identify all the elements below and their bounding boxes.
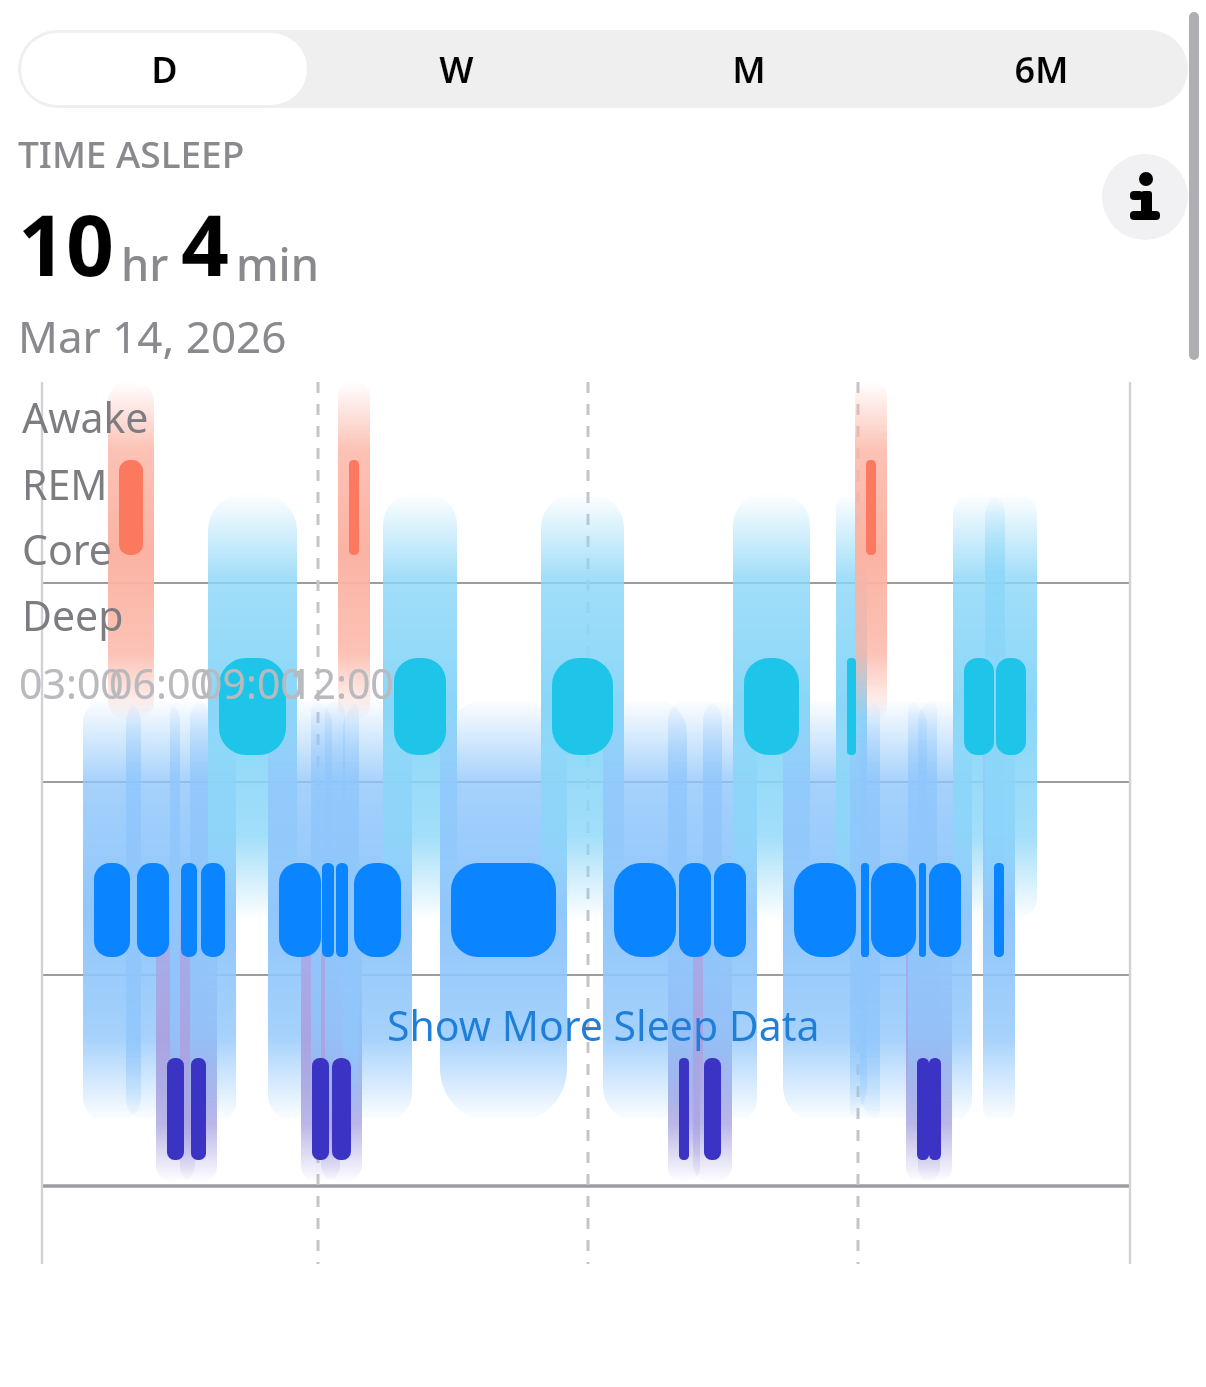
button[interactable]: Information about sleep data [1102, 154, 1188, 240]
button[interactable]: 6M [898, 33, 1185, 105]
staticText: min [236, 233, 319, 294]
staticText: 03:00 [19, 655, 124, 711]
staticText: Mar 14, 2026 [18, 306, 287, 366]
staticText: Core [22, 521, 112, 577]
staticText: 6M [1014, 45, 1069, 94]
staticText: W [439, 45, 474, 94]
staticText: Awake [22, 389, 149, 445]
staticText: 4 [181, 186, 230, 300]
button[interactable]: M [605, 33, 892, 105]
staticText: 12:00 [289, 655, 394, 711]
button[interactable]: D [21, 33, 307, 105]
staticText: D [151, 45, 178, 94]
staticText: hr [121, 233, 169, 294]
staticText: Show More Sleep Data [387, 997, 820, 1053]
button[interactable]: W [313, 33, 599, 105]
button[interactable]: Show More Sleep Data [367, 985, 840, 1065]
staticText: Deep [22, 587, 124, 643]
staticText: M [732, 45, 766, 94]
staticText: 10 [18, 186, 115, 300]
staticText: TIME ASLEEP [18, 128, 245, 178]
staticText: 06:00 [109, 655, 214, 711]
staticText: REM [22, 456, 108, 512]
staticText: 09:00 [199, 655, 304, 711]
